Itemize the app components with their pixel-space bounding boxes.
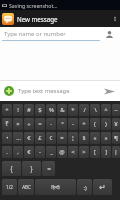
button[interactable]: 1/2 [2, 179, 17, 195]
button[interactable]: - [35, 146, 45, 158]
button[interactable]: , [13, 146, 23, 158]
staticText: ABC [22, 184, 31, 190]
button[interactable]: Type name or number [2, 27, 100, 41]
staticText: _ [50, 148, 53, 156]
staticText: · [50, 120, 52, 128]
staticText: $ [38, 106, 42, 114]
staticText: ] [105, 148, 107, 156]
staticText: « [93, 134, 97, 142]
button[interactable]: » [101, 132, 111, 144]
button[interactable]: \ [90, 104, 100, 116]
staticText: & [60, 106, 65, 114]
staticText: { [10, 164, 13, 173]
staticText: £ [38, 134, 42, 142]
staticText: 1/2 [6, 184, 13, 190]
button[interactable]: + [2, 104, 12, 116]
staticText: ¦ [71, 134, 75, 142]
button[interactable]: } [22, 161, 41, 176]
button[interactable]: हिन्दी [35, 179, 76, 195]
staticText: @ [59, 148, 65, 156]
staticText: , [17, 148, 19, 156]
staticText: * [71, 106, 75, 114]
button[interactable]: / [79, 104, 89, 116]
button[interactable]: = [35, 118, 45, 130]
staticText: … [16, 134, 21, 142]
button[interactable]: ) [101, 118, 111, 130]
staticText: } [30, 164, 33, 173]
button[interactable]: • [2, 132, 12, 144]
button[interactable]: = [42, 161, 55, 176]
staticText: € [27, 134, 31, 142]
staticText: + [5, 106, 9, 114]
button[interactable]: | [112, 146, 120, 158]
staticText: ° [61, 120, 64, 128]
staticText: ÷ [27, 120, 31, 128]
button[interactable]: More options [109, 10, 120, 27]
staticText: ! [17, 106, 19, 114]
button[interactable]: · [46, 118, 56, 130]
button[interactable]: ¦ [68, 132, 78, 144]
button[interactable]: ° [57, 118, 67, 130]
staticText: [ [94, 148, 96, 156]
button[interactable]: ^ [101, 104, 111, 116]
staticText: . [6, 148, 8, 156]
staticText: Saving screenshot... [9, 2, 58, 9]
button[interactable]: < [68, 146, 78, 158]
button[interactable]: € [24, 132, 34, 144]
button[interactable]: { [2, 161, 21, 176]
button[interactable]: « [90, 132, 100, 144]
staticText: ¢ [49, 134, 53, 142]
button[interactable]: + [79, 118, 89, 130]
button[interactable]: ↵ [93, 179, 112, 195]
button[interactable]: Contacts [103, 28, 116, 41]
staticText: ^ [104, 106, 108, 114]
button[interactable]: ABC [18, 179, 34, 195]
button[interactable]: ¥ [112, 118, 120, 130]
staticText: % [49, 106, 54, 114]
button[interactable]: - [68, 118, 78, 130]
staticText: ¤ [60, 134, 64, 142]
button[interactable]: ~ [112, 104, 120, 116]
button[interactable]: ÷ [24, 118, 34, 130]
button[interactable]: ¢ [46, 132, 56, 144]
button[interactable]: € [24, 146, 34, 158]
button[interactable]: _ [46, 146, 56, 158]
button[interactable]: ₹ [2, 118, 12, 130]
button[interactable]: ¤ [57, 132, 67, 144]
staticText: | [114, 148, 118, 156]
button[interactable]: > [79, 146, 89, 158]
staticText: = [38, 120, 42, 128]
button[interactable]: Send [101, 83, 117, 99]
staticText: / [83, 106, 86, 114]
button[interactable]: ( [90, 118, 100, 130]
button[interactable]: £ [35, 132, 45, 144]
button[interactable]: [ [90, 146, 100, 158]
staticText: Type text message [18, 87, 70, 95]
button[interactable]: . [2, 146, 12, 158]
button[interactable]: Messaging app icon [2, 13, 14, 25]
button[interactable]: Add attachment [3, 85, 14, 96]
button[interactable]: ¶ [112, 132, 120, 144]
staticText: हिन्दी [51, 184, 60, 190]
staticText: + [82, 120, 86, 128]
staticText: § [82, 134, 86, 142]
staticText: - [39, 148, 41, 156]
button[interactable]: ! [13, 104, 23, 116]
button[interactable]: @ [57, 146, 67, 158]
button[interactable]: :) [77, 179, 92, 195]
button[interactable]: & [57, 104, 67, 116]
staticText: » [104, 134, 108, 142]
staticText: ¶ [114, 134, 118, 142]
button[interactable]: % [46, 104, 56, 116]
button[interactable]: § [79, 132, 89, 144]
button[interactable]: $ [35, 104, 45, 116]
staticText: • [6, 134, 9, 142]
staticText: :) [83, 184, 87, 191]
staticText: ₹ [5, 120, 9, 128]
button[interactable]: … [13, 132, 23, 144]
staticText: ¥ [114, 120, 118, 128]
button[interactable]: * [68, 104, 78, 116]
button[interactable]: × [13, 118, 23, 130]
button[interactable]: ] [101, 146, 111, 158]
button[interactable]: # [24, 104, 34, 116]
